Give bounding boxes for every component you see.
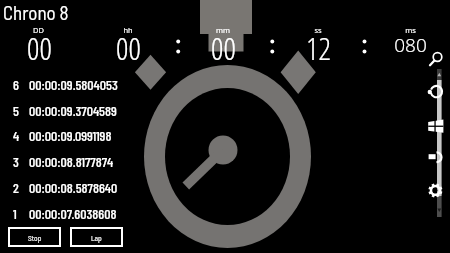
button[interactable] [8, 73, 128, 97]
staticText: DD [33, 25, 44, 35]
staticText: 00:00:08.5878640 [29, 179, 118, 196]
staticText: mm [216, 25, 230, 35]
staticText: 2 [13, 179, 19, 196]
staticText: 6 [13, 76, 19, 93]
staticText: Lap [91, 233, 102, 242]
staticText: 00:00:07.6038608 [29, 205, 117, 222]
staticText: 3 [13, 153, 19, 170]
staticText: Chrono 8 [3, 1, 69, 24]
staticText: 00:00:09.3704589 [29, 102, 117, 119]
button[interactable]: Lap [70, 227, 123, 247]
button[interactable] [427, 83, 445, 101]
staticText: 1 [13, 205, 17, 222]
staticText: 00:00:09.0991198 [29, 127, 112, 144]
button[interactable] [428, 48, 446, 66]
button[interactable] [426, 115, 444, 133]
staticText: hh [123, 25, 133, 35]
staticText: ss [314, 25, 322, 35]
staticText: 4 [13, 127, 20, 144]
button[interactable] [8, 99, 128, 123]
button[interactable] [8, 124, 128, 148]
staticText: ms [405, 25, 416, 35]
staticText: 00 [116, 27, 141, 69]
button[interactable] [426, 147, 444, 165]
button[interactable] [427, 181, 445, 199]
staticText: 00 [211, 27, 236, 69]
staticText: 00:00:09.5804053 [29, 76, 118, 93]
staticText: 12 [306, 27, 331, 69]
staticText: Stop [28, 233, 42, 242]
button[interactable] [8, 176, 128, 200]
staticText: 00 [27, 27, 52, 69]
staticText: 00:00:08.8177874 [29, 153, 114, 170]
staticText: 080 [394, 32, 427, 58]
staticText: 5 [13, 102, 19, 119]
button[interactable] [8, 150, 128, 174]
button[interactable]: Stop [8, 227, 61, 247]
button[interactable] [8, 202, 128, 226]
